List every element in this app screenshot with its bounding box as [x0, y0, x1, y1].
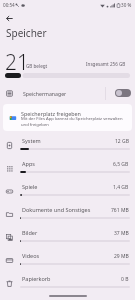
- staticText: 12 GB: [115, 138, 129, 145]
- staticText: 761 MB: [111, 207, 129, 214]
- button[interactable]: System: [0, 134, 135, 157]
- staticText: Papierkorb: [22, 275, 51, 282]
- staticText: GB belegt: [26, 63, 48, 69]
- button[interactable]: Videos: [0, 249, 135, 272]
- button[interactable]: Speicherplatz freigeben: [3, 104, 132, 131]
- staticText: Speicherplatz freigeben: [21, 110, 81, 117]
- staticText: Speichermanager: [23, 90, 67, 97]
- staticText: 00:54: [3, 2, 15, 8]
- staticText: 0 B: [121, 276, 129, 283]
- button[interactable]: Speichermanager umschalten: [115, 89, 131, 97]
- button[interactable]: Papierkorb: [0, 272, 135, 295]
- staticText: 29 MB: [114, 253, 129, 260]
- staticText: 21: [5, 48, 29, 77]
- staticText: Mit der Files App kannst du Speicherplat…: [21, 116, 126, 128]
- button[interactable]: Bilder: [0, 226, 135, 249]
- staticText: Dokumente und Sonstiges: [22, 206, 91, 213]
- staticText: 37 MB: [114, 230, 129, 237]
- button[interactable]: Speichermanager: [0, 82, 135, 104]
- staticText: Apps: [22, 160, 35, 167]
- staticText: Videos: [22, 252, 40, 259]
- staticText: 30 %: [121, 2, 132, 8]
- button[interactable]: Zurück: [3, 12, 15, 24]
- button[interactable]: Spiele: [0, 180, 135, 203]
- button[interactable]: Apps: [0, 157, 135, 180]
- staticText: 1,4 GB: [113, 184, 129, 191]
- staticText: Bilder: [22, 229, 38, 236]
- button[interactable]: Dokumente und Sonstiges: [0, 203, 135, 226]
- staticText: Spiele: [22, 183, 38, 190]
- staticText: System: [22, 137, 41, 144]
- staticText: Insgesamt 256 GB: [86, 61, 126, 67]
- staticText: 6,5 GB: [113, 161, 129, 168]
- staticText: Speicher: [6, 26, 47, 40]
